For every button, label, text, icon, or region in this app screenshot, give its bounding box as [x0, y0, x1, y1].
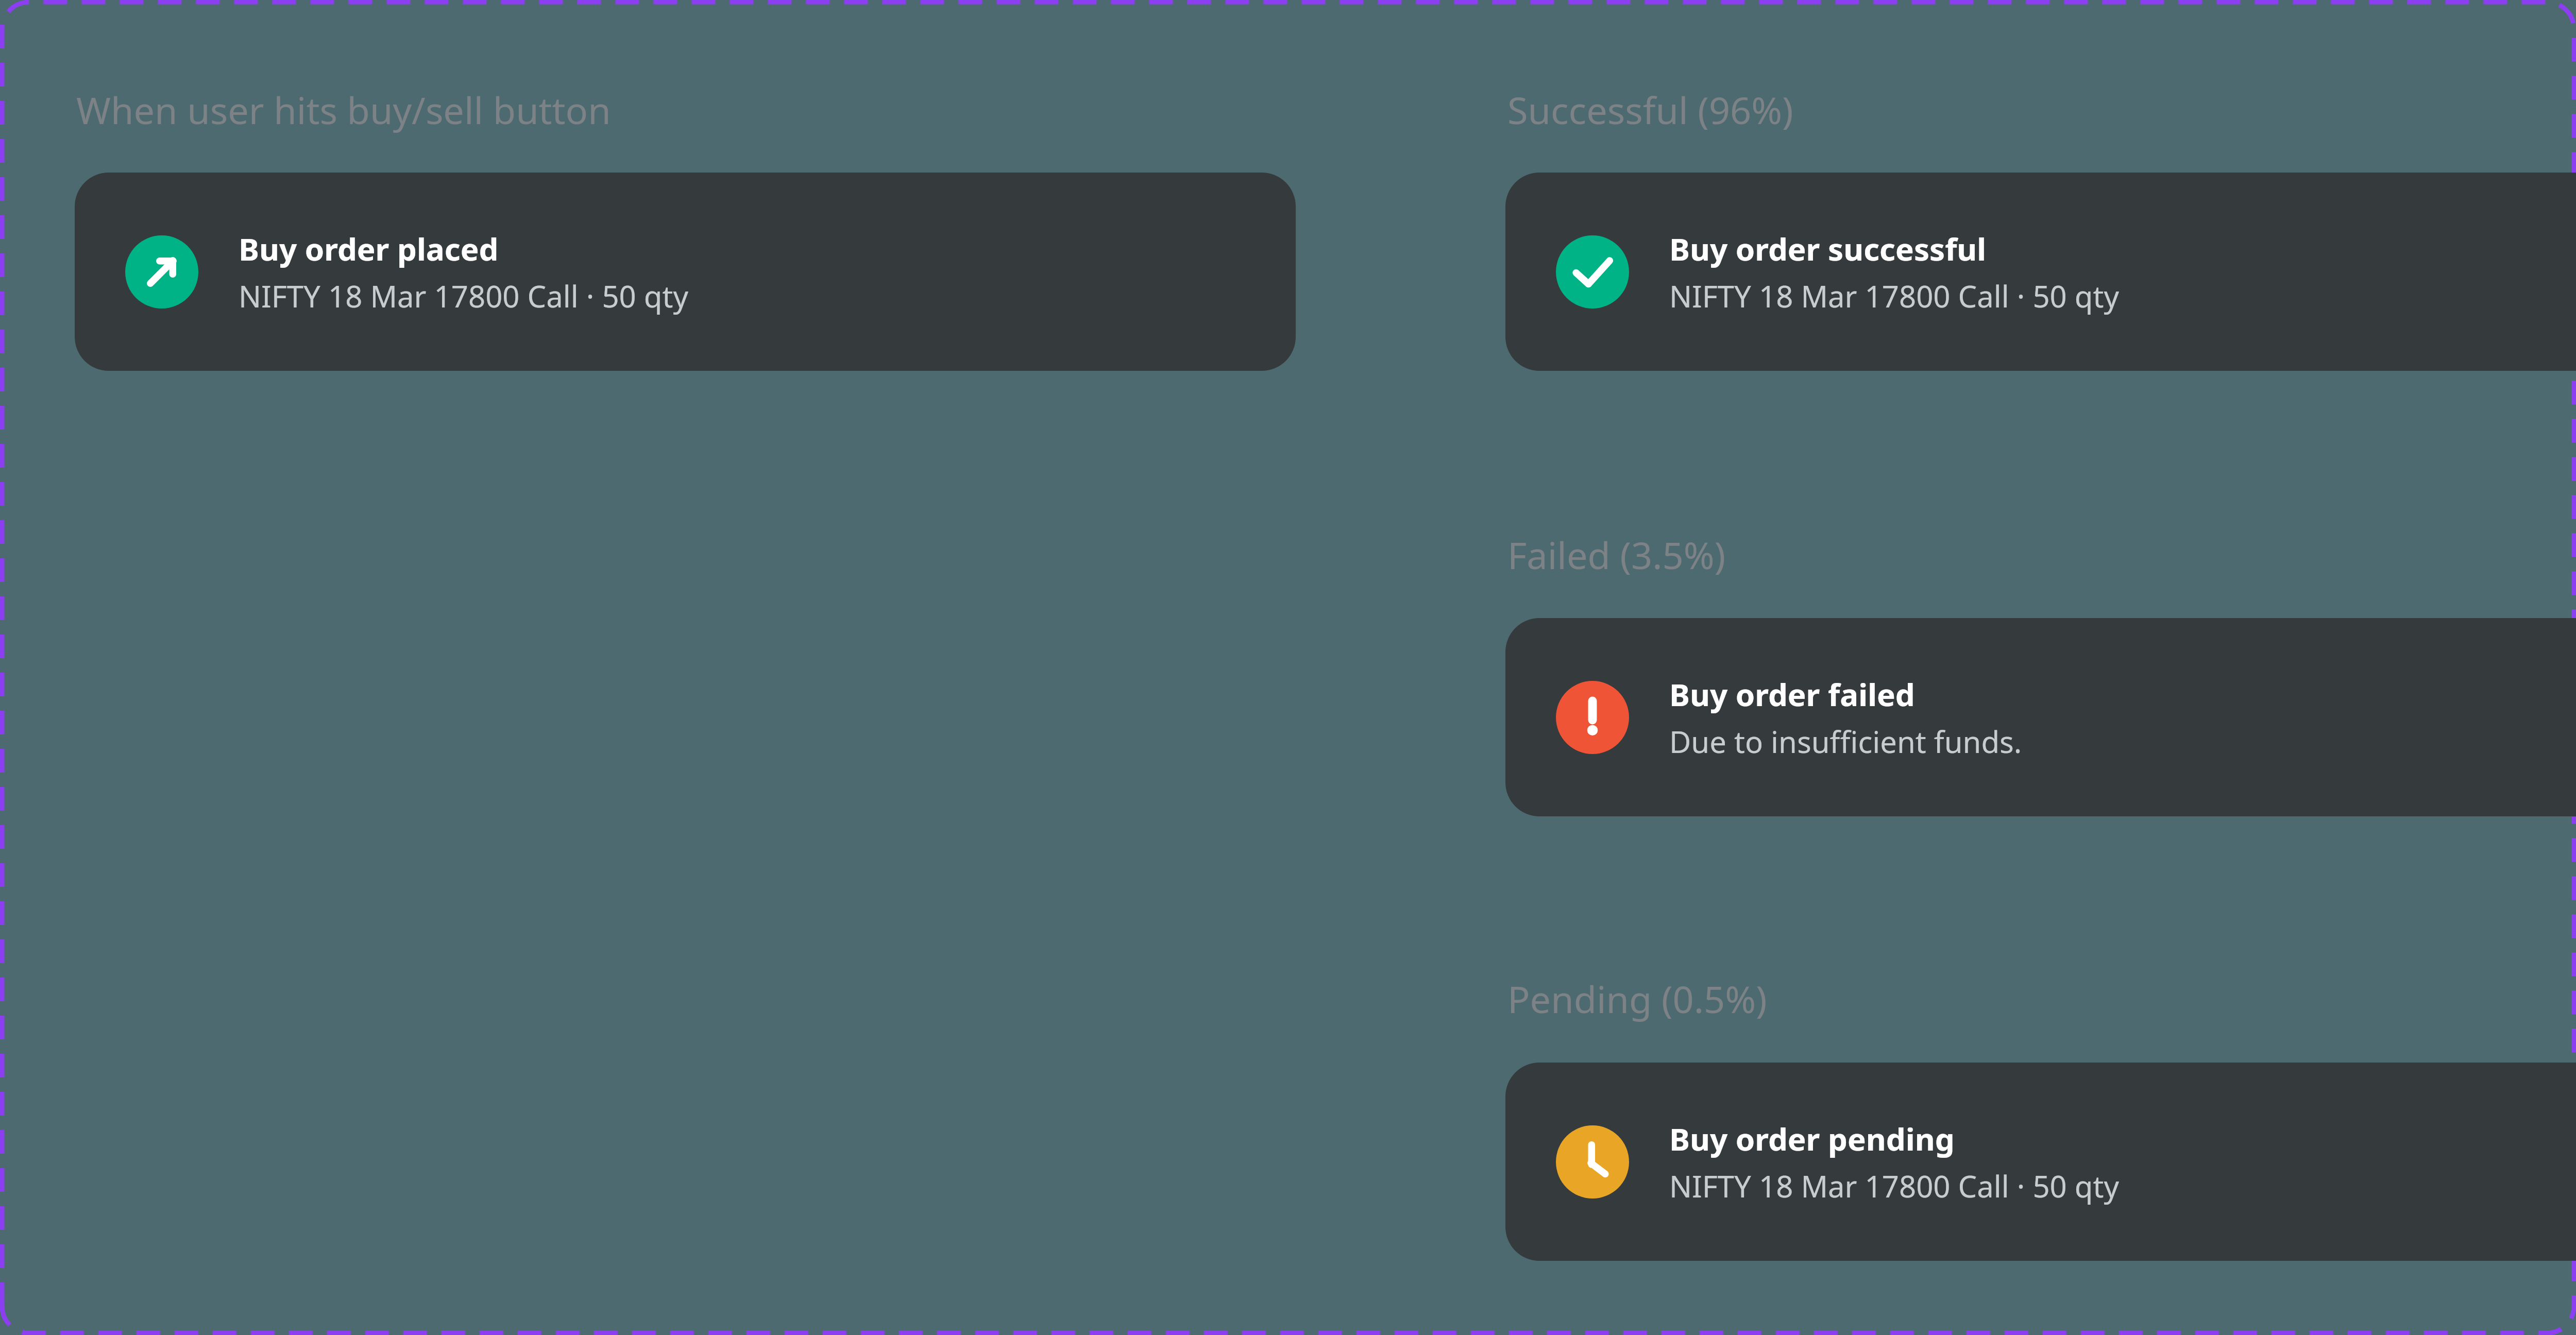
staticText: Buy order pending — [1669, 1118, 1955, 1160]
staticText: When user hits buy/sell button — [76, 84, 611, 135]
button[interactable]: Buy order placed — [75, 173, 1296, 371]
staticText: NIFTY 18 Mar 17800 Call · 50 qty — [239, 276, 689, 316]
staticText: Failed (3.5%) — [1507, 529, 1726, 580]
staticText: Successful (96%) — [1507, 84, 1793, 135]
button[interactable]: Buy order failed — [1505, 618, 2576, 816]
button[interactable]: Buy order successful — [1505, 173, 2576, 371]
staticText: NIFTY 18 Mar 17800 Call · 50 qty — [1669, 276, 2120, 316]
button[interactable]: Buy order pending — [1505, 1063, 2576, 1261]
staticText: Buy order failed — [1669, 673, 1915, 715]
staticText: Pending (0.5%) — [1507, 973, 1767, 1024]
staticText: Buy order successful — [1669, 228, 1987, 270]
staticText: Due to insufficient funds. — [1669, 721, 2022, 762]
staticText: NIFTY 18 Mar 17800 Call · 50 qty — [1669, 1166, 2120, 1206]
staticText: Buy order placed — [239, 228, 499, 270]
